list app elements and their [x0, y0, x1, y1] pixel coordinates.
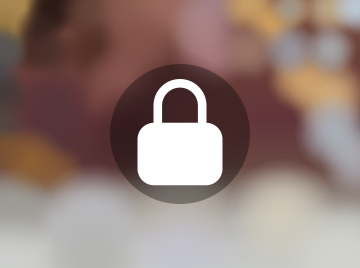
button[interactable]: Content locked — [110, 64, 250, 204]
